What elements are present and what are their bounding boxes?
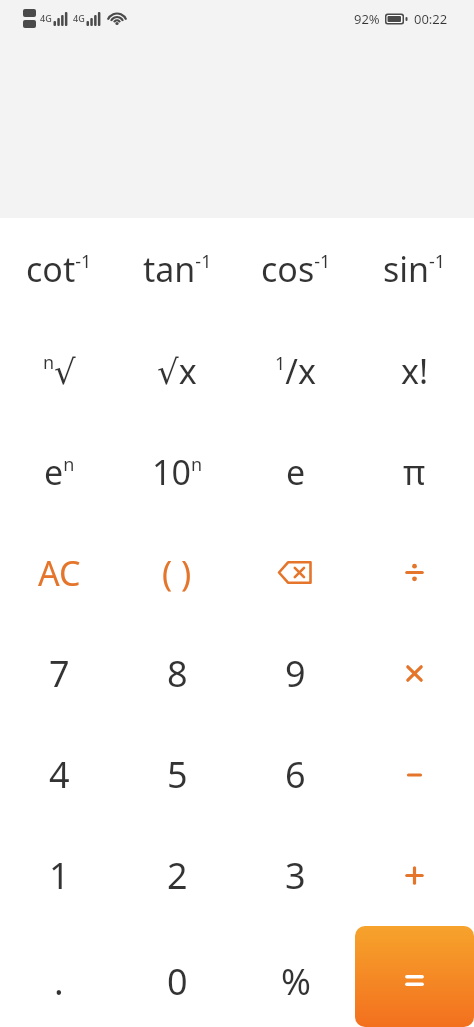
- button[interactable]: 3: [236, 825, 355, 926]
- button[interactable]: tan-1: [118, 218, 236, 320]
- staticText: e: [286, 449, 306, 495]
- button[interactable]: 4: [0, 724, 118, 825]
- staticText: .: [54, 957, 64, 1006]
- button[interactable]: π: [355, 421, 474, 522]
- button[interactable]: 1/x: [236, 320, 355, 421]
- staticText: 9: [285, 649, 306, 698]
- button[interactable]: 2: [118, 825, 236, 926]
- staticText: 92%: [354, 10, 380, 28]
- button[interactable]: sin-1: [355, 218, 474, 320]
- button[interactable]: 0: [118, 926, 236, 1027]
- staticText: AC: [38, 550, 81, 596]
- staticText: 2: [167, 851, 188, 900]
- button[interactable]: cot-1: [0, 218, 118, 320]
- staticText: 5: [167, 750, 188, 799]
- button[interactable]: 5: [118, 724, 236, 825]
- button[interactable]: [355, 623, 474, 724]
- staticText: 7: [49, 649, 70, 698]
- staticText: 3: [285, 851, 306, 900]
- staticText: sin-1: [383, 246, 446, 292]
- staticText: %: [281, 957, 311, 1006]
- button[interactable]: cos-1: [236, 218, 355, 320]
- staticText: ( ): [162, 550, 192, 596]
- staticText: 4: [49, 750, 70, 799]
- button[interactable]: 8: [118, 623, 236, 724]
- button[interactable]: ( ): [118, 522, 236, 623]
- staticText: 0: [167, 957, 188, 1006]
- staticText: √x: [157, 348, 197, 394]
- button[interactable]: 9: [236, 623, 355, 724]
- staticText: 10n: [152, 449, 203, 495]
- staticText: 4G: [40, 12, 52, 24]
- button[interactable]: 1: [0, 825, 118, 926]
- staticText: cos-1: [261, 246, 331, 292]
- button[interactable]: [355, 926, 474, 1027]
- staticText: 6: [285, 750, 306, 799]
- staticText: tan-1: [143, 246, 212, 292]
- staticText: 1: [49, 851, 70, 900]
- button[interactable]: x!: [355, 320, 474, 421]
- button[interactable]: 6: [236, 724, 355, 825]
- staticText: 00:22: [414, 10, 448, 28]
- button[interactable]: e: [236, 421, 355, 522]
- button[interactable]: n√: [0, 320, 118, 421]
- button[interactable]: [355, 522, 474, 623]
- staticText: x!: [401, 348, 429, 394]
- button[interactable]: %: [236, 926, 355, 1027]
- staticText: 8: [167, 649, 188, 698]
- staticText: 1/x: [275, 348, 316, 394]
- button[interactable]: AC: [0, 522, 118, 623]
- button[interactable]: 10n: [118, 421, 236, 522]
- button[interactable]: [355, 825, 474, 926]
- button[interactable]: 7: [0, 623, 118, 724]
- staticText: en: [44, 449, 75, 495]
- staticText: n√: [43, 350, 76, 392]
- button[interactable]: [236, 522, 355, 623]
- staticText: π: [403, 449, 426, 495]
- button[interactable]: .: [0, 926, 118, 1027]
- staticText: cot-1: [26, 246, 92, 292]
- staticText: 4G: [73, 12, 85, 24]
- button[interactable]: [355, 724, 474, 825]
- button[interactable]: en: [0, 421, 118, 522]
- button[interactable]: √x: [118, 320, 236, 421]
